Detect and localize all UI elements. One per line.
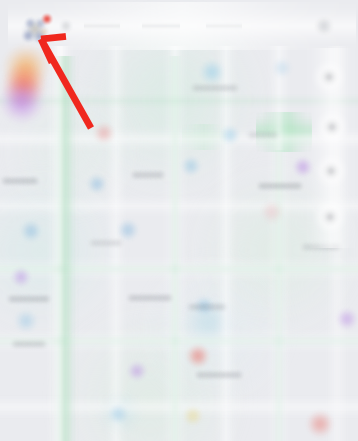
button[interactable]: More options	[313, 15, 335, 37]
button[interactable]: Street View	[313, 200, 349, 236]
button[interactable]: Map layers	[312, 60, 348, 96]
button[interactable]: Search	[58, 18, 74, 34]
button[interactable]: Account	[15, 9, 55, 49]
button[interactable]: My location	[315, 110, 351, 146]
button[interactable]: Compass	[314, 154, 350, 190]
